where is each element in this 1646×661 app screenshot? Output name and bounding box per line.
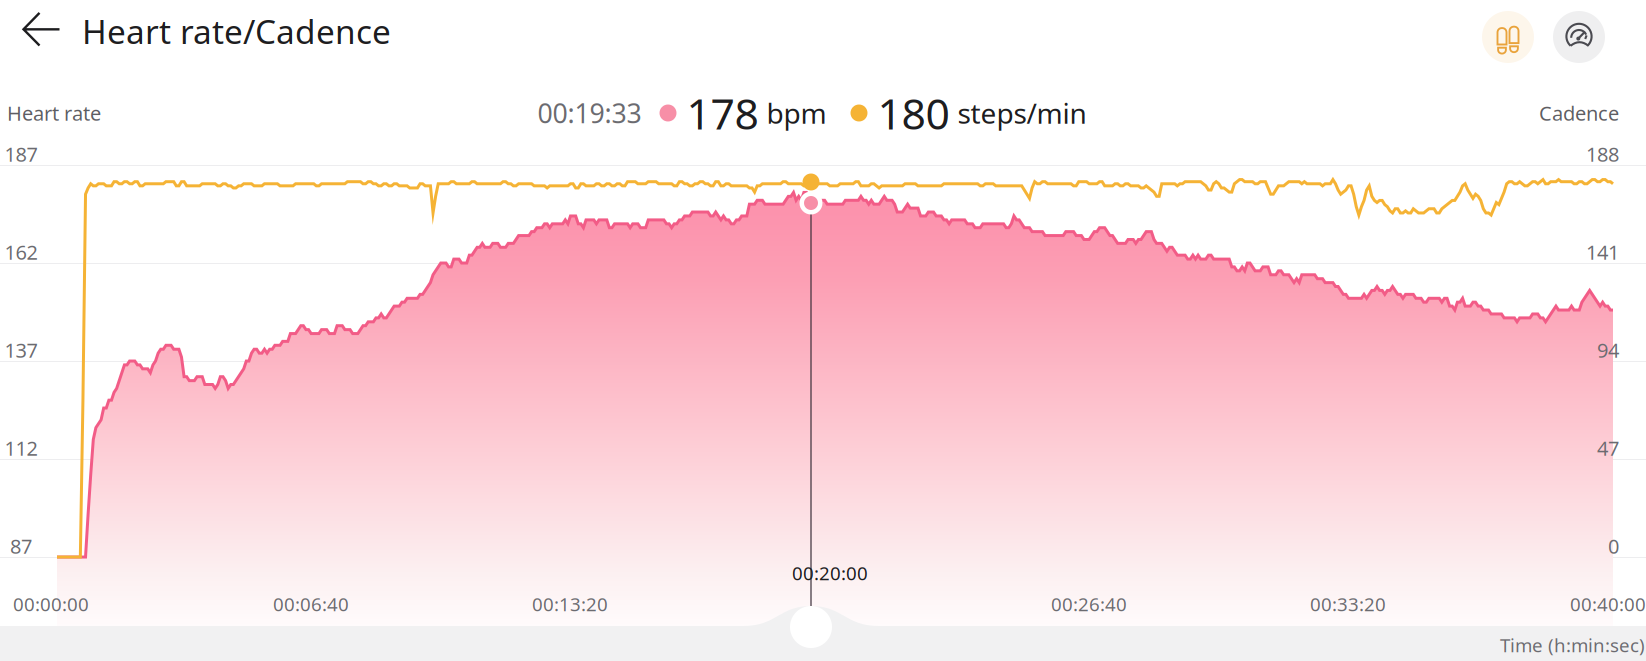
staticText: 162 [4,239,37,265]
button[interactable]: Scrub time [790,606,832,648]
button[interactable]: Pace [1553,11,1605,63]
staticText: 00:40:00 [1570,592,1646,616]
staticText: steps/min [957,94,1086,132]
staticText: 00:19:33 [537,95,641,131]
staticText: 00:06:40 [273,592,349,616]
button[interactable]: Steps [1482,11,1534,63]
staticText: 180 [877,85,949,141]
staticText: 178 [686,85,758,141]
staticText: Heart rate [7,100,101,126]
staticText: 87 [10,533,32,559]
staticText: 00:20:00 [792,561,868,585]
staticText: 00:00:00 [13,592,89,616]
staticText: bpm [766,94,826,132]
staticText: 47 [1597,435,1619,461]
staticText: 137 [4,337,37,363]
staticText: 141 [1586,239,1619,265]
button[interactable]: Back [12,0,72,59]
staticText: 0 [1608,533,1619,559]
staticText: Time (h:min:sec) [1500,633,1645,657]
staticText: 187 [4,141,37,167]
staticText: 00:33:20 [1310,592,1386,616]
staticText: 00:13:20 [532,592,608,616]
staticText: Heart rate/Cadence [82,9,391,53]
staticText: Cadence [1539,100,1619,126]
staticText: 00:26:40 [1051,592,1127,616]
staticText: 94 [1597,337,1619,363]
staticText: 188 [1586,141,1619,167]
staticText: 112 [4,435,37,461]
